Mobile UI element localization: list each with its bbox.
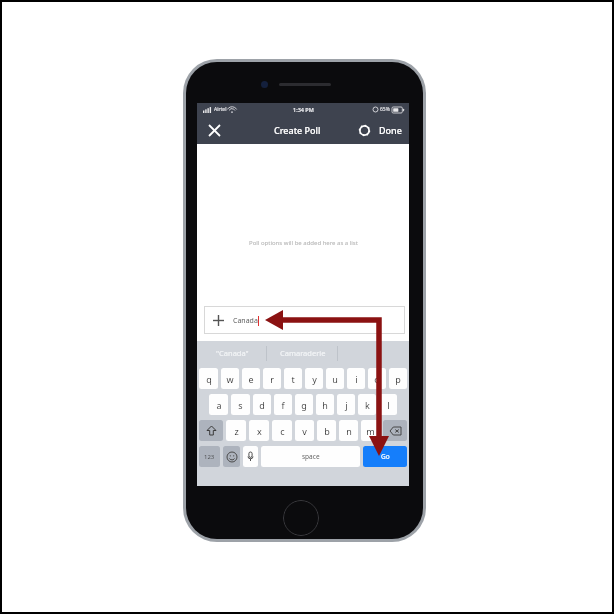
button[interactable]: b bbox=[317, 420, 336, 441]
button[interactable]: a bbox=[209, 394, 228, 415]
staticText: space bbox=[302, 452, 320, 461]
button[interactable]: y bbox=[305, 368, 323, 389]
button[interactable]: space bbox=[261, 446, 360, 467]
button[interactable]: Go bbox=[363, 446, 407, 467]
staticText: j bbox=[345, 399, 348, 411]
staticText: y bbox=[312, 373, 317, 385]
button[interactable]: r bbox=[263, 368, 281, 389]
staticText: Camaraderie bbox=[280, 348, 326, 358]
button[interactable]: d bbox=[253, 394, 271, 415]
staticText: a bbox=[216, 399, 222, 411]
staticText: d bbox=[259, 399, 265, 411]
staticText: e bbox=[248, 373, 254, 385]
button[interactable]: m bbox=[361, 420, 380, 441]
staticText: g bbox=[301, 399, 307, 411]
staticText: q bbox=[206, 373, 212, 385]
staticText: Create Poll bbox=[274, 124, 321, 136]
button[interactable]: Settings bbox=[356, 122, 372, 138]
button[interactable]: p bbox=[389, 368, 407, 389]
button[interactable]: f bbox=[274, 394, 292, 415]
button[interactable]: Done bbox=[379, 124, 402, 136]
staticText: m bbox=[366, 425, 375, 437]
button[interactable]: h bbox=[316, 394, 334, 415]
button[interactable]: s bbox=[231, 394, 250, 415]
staticText: c bbox=[280, 425, 285, 437]
button[interactable]: t bbox=[284, 368, 302, 389]
button[interactable]: Home bbox=[283, 500, 319, 536]
staticText: w bbox=[226, 373, 234, 385]
staticText: Airtel bbox=[214, 106, 227, 113]
button[interactable]: x bbox=[249, 420, 269, 441]
staticText: r bbox=[270, 373, 274, 385]
button[interactable]: Canada bbox=[204, 306, 405, 334]
staticText: s bbox=[238, 399, 243, 411]
staticText: u bbox=[332, 373, 338, 385]
button[interactable]: j bbox=[337, 394, 355, 415]
button[interactable]: Numbers bbox=[199, 446, 220, 467]
button[interactable] bbox=[338, 341, 409, 365]
button[interactable]: w bbox=[221, 368, 239, 389]
staticText: "Canada" bbox=[216, 348, 249, 358]
staticText: h bbox=[322, 399, 328, 411]
button[interactable]: e bbox=[242, 368, 260, 389]
staticText: n bbox=[346, 425, 352, 437]
button[interactable]: l bbox=[379, 394, 397, 415]
button[interactable]: Camaraderie bbox=[267, 341, 338, 365]
button[interactable]: o bbox=[368, 368, 386, 389]
button[interactable]: k bbox=[358, 394, 376, 415]
staticText: 65% bbox=[380, 106, 390, 113]
staticText: l bbox=[387, 399, 390, 411]
button[interactable]: g bbox=[295, 394, 313, 415]
button[interactable]: Emoji bbox=[223, 446, 240, 467]
button[interactable]: c bbox=[272, 420, 292, 441]
button[interactable]: Close bbox=[205, 121, 223, 139]
staticText: v bbox=[302, 425, 307, 437]
button[interactable]: v bbox=[295, 420, 314, 441]
button[interactable]: q bbox=[199, 368, 218, 389]
staticText: t bbox=[291, 373, 295, 385]
staticText: b bbox=[324, 425, 330, 437]
staticText: k bbox=[365, 399, 370, 411]
staticText: f bbox=[281, 399, 285, 411]
button[interactable]: i bbox=[347, 368, 365, 389]
staticText: z bbox=[234, 425, 239, 437]
button[interactable]: Shift bbox=[199, 420, 223, 441]
staticText: o bbox=[374, 373, 380, 385]
staticText: 123 bbox=[204, 453, 215, 461]
staticText: Done bbox=[379, 124, 402, 136]
staticText: Poll options will be added here as a lis… bbox=[249, 239, 358, 247]
button[interactable]: Backspace bbox=[383, 420, 407, 441]
staticText: 1:34 PM bbox=[293, 106, 314, 113]
button[interactable]: Dictate bbox=[243, 446, 258, 467]
staticText: p bbox=[395, 373, 401, 385]
button[interactable]: u bbox=[326, 368, 344, 389]
staticText: Canada bbox=[233, 316, 258, 326]
button[interactable]: n bbox=[339, 420, 358, 441]
button[interactable]: z bbox=[226, 420, 246, 441]
staticText: x bbox=[257, 425, 262, 437]
staticText: Go bbox=[381, 452, 390, 461]
staticText: i bbox=[355, 373, 358, 385]
button[interactable]: "Canada" bbox=[197, 341, 267, 365]
